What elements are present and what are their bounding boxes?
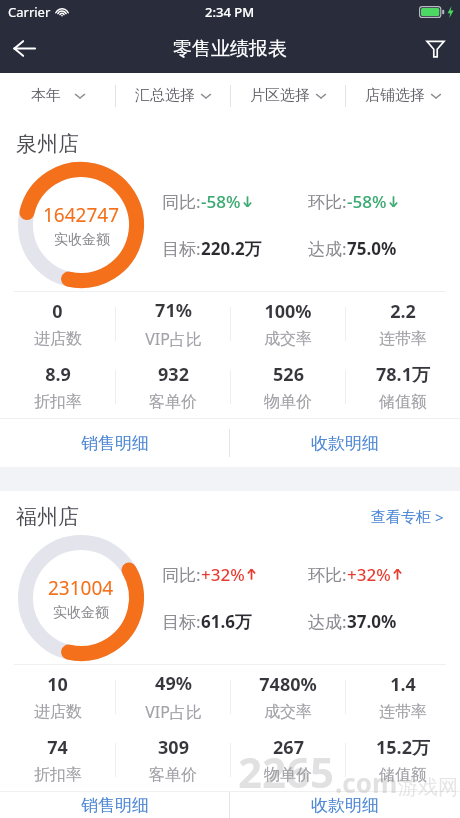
button[interactable]: 1.4	[346, 665, 460, 728]
staticText: 71%	[155, 298, 192, 323]
button[interactable]: 销售明细	[0, 419, 229, 467]
staticText: 连带率	[379, 702, 427, 722]
button[interactable]: 店铺选择	[346, 73, 460, 118]
staticText: 泉州店	[16, 131, 79, 157]
staticText: 达成:	[308, 237, 347, 260]
staticText: 达成:	[308, 610, 347, 633]
staticText: 1642747	[43, 202, 120, 228]
staticText: 目标:	[162, 610, 201, 633]
staticText: 环比:	[308, 190, 347, 213]
staticText: 片区选择	[250, 86, 310, 105]
staticText: 成交率	[264, 702, 312, 722]
button[interactable]: 10	[0, 665, 115, 728]
staticText: 游戏网	[398, 775, 458, 800]
staticText: 实收金额	[54, 231, 110, 249]
button[interactable]: 收款明细	[230, 419, 460, 467]
staticText: 231004	[48, 575, 114, 601]
staticText: 0	[52, 299, 63, 324]
staticText: 61.6万	[201, 610, 252, 633]
staticText: 100%	[264, 299, 312, 324]
staticText: 储值额	[379, 392, 427, 412]
button[interactable]: Filter	[411, 24, 460, 73]
staticText: 526	[273, 362, 304, 387]
button[interactable]: 49%	[116, 665, 230, 728]
staticText: VIP占比	[145, 328, 202, 350]
staticText: 本年	[31, 86, 61, 105]
staticText: 收款明细	[311, 795, 379, 816]
staticText: 客单价	[149, 765, 197, 785]
staticText: >	[435, 507, 444, 527]
staticText: 零售业绩报表	[173, 37, 287, 61]
button[interactable]: 片区选择	[231, 73, 345, 118]
button[interactable]: 78.1万	[346, 355, 460, 418]
staticText: 物单价	[264, 392, 312, 412]
button[interactable]: 526	[231, 355, 345, 418]
staticText: 2:34 PM	[205, 3, 255, 21]
button[interactable]: 2.2	[346, 292, 460, 355]
button[interactable]: 本年	[0, 73, 115, 118]
button[interactable]: 7480%	[231, 665, 345, 728]
staticText: 收款明细	[311, 433, 379, 454]
staticText: 37.0%	[347, 610, 397, 633]
button[interactable]: 267	[231, 728, 345, 791]
staticText: 2265	[238, 743, 335, 800]
staticText: 客单价	[149, 392, 197, 412]
staticText: +32%	[201, 563, 245, 586]
button[interactable]: 932	[116, 355, 230, 418]
staticText: 折扣率	[34, 765, 82, 785]
button[interactable]: 销售明细	[0, 792, 229, 818]
staticText: +32%	[347, 563, 391, 586]
staticText: 目标:	[162, 237, 201, 260]
button[interactable]: 0	[0, 292, 115, 355]
staticText: 查看专柜	[371, 508, 431, 527]
staticText: 实收金额	[53, 604, 109, 622]
staticText: 折扣率	[34, 392, 82, 412]
staticText: 78.1万	[376, 362, 430, 387]
staticText: 汇总选择	[135, 86, 195, 105]
button[interactable]: 100%	[231, 292, 345, 355]
staticText: 进店数	[34, 329, 82, 349]
button[interactable]: 收款明细	[230, 792, 460, 818]
staticText: -58%	[201, 190, 241, 213]
staticText: 1.4	[390, 672, 416, 697]
staticText: 74	[47, 735, 68, 760]
staticText: 220.2万	[201, 237, 262, 260]
staticText: 同比:	[162, 190, 201, 213]
staticText: 环比:	[308, 563, 347, 586]
button[interactable]: 309	[116, 728, 230, 791]
button[interactable]: 15.2万	[346, 728, 460, 791]
staticText: 成交率	[264, 329, 312, 349]
staticText: 309	[158, 735, 189, 760]
staticText: 店铺选择	[365, 86, 425, 105]
staticText: 福州店	[16, 504, 79, 530]
staticText: 267	[273, 735, 304, 760]
staticText: 10	[47, 672, 68, 697]
staticText: 8.9	[45, 362, 71, 387]
button[interactable]: 汇总选择	[116, 73, 230, 118]
button[interactable]: 8.9	[0, 355, 115, 418]
staticText: 2.2	[390, 299, 416, 324]
button[interactable]: Back	[0, 24, 49, 73]
staticText: 同比:	[162, 563, 201, 586]
staticText: 15.2万	[376, 735, 430, 760]
button[interactable]: 查看专柜	[371, 507, 444, 527]
button[interactable]: 74	[0, 728, 115, 791]
staticText: VIP占比	[145, 701, 202, 723]
staticText: 进店数	[34, 702, 82, 722]
staticText: 储值额	[379, 765, 427, 785]
staticText: 75.0%	[347, 237, 397, 260]
staticText: 7480%	[259, 672, 317, 697]
staticText: -58%	[347, 190, 387, 213]
staticText: .com	[335, 765, 398, 800]
staticText: 49%	[155, 671, 192, 696]
staticText: 销售明细	[81, 433, 149, 454]
staticText: 连带率	[379, 329, 427, 349]
staticText: 932	[158, 362, 189, 387]
staticText: 物单价	[264, 765, 312, 785]
staticText: 销售明细	[81, 795, 149, 816]
button[interactable]: 71%	[116, 292, 230, 355]
staticText: Carrier	[8, 3, 51, 21]
